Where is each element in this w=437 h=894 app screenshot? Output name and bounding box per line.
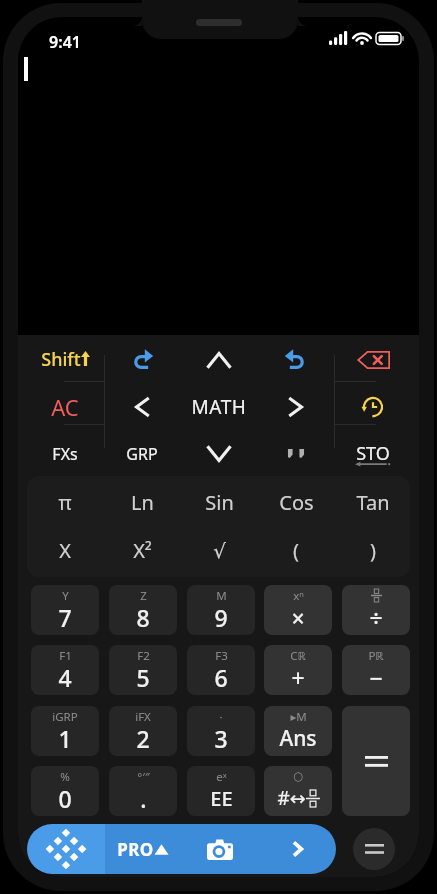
staticText: xⁿ — [293, 588, 304, 604]
button[interactable]: ○ — [264, 766, 332, 816]
staticText: F3 — [215, 648, 228, 664]
button[interactable]: Y — [31, 585, 99, 635]
staticText: MATH — [191, 394, 247, 420]
staticText: 0 — [58, 783, 72, 814]
staticText: ) — [370, 537, 376, 564]
staticText: 9 — [214, 602, 228, 633]
staticText: 3 — [214, 723, 228, 754]
button[interactable]: π — [27, 479, 103, 525]
staticText: ÷ — [369, 602, 383, 633]
button[interactable]: Ln — [104, 479, 180, 525]
staticText: iFX — [135, 709, 151, 725]
button[interactable]: iFX — [109, 706, 177, 756]
button[interactable]: F3 — [187, 645, 255, 695]
button[interactable]: Sin — [181, 479, 257, 525]
staticText: Y — [62, 588, 69, 604]
button[interactable]: X — [27, 527, 103, 573]
button[interactable]: Move down — [182, 432, 256, 475]
button[interactable]: Camera — [188, 824, 252, 874]
button[interactable]: GRP — [105, 432, 179, 475]
button[interactable]: ) — [335, 527, 411, 573]
button[interactable]: Move left — [105, 385, 179, 428]
button[interactable]: iGRP — [31, 706, 99, 756]
staticText: 2 — [136, 723, 150, 754]
button[interactable]: Pℝ — [342, 645, 410, 695]
staticText: F2 — [137, 648, 150, 664]
staticText: GRP — [126, 443, 158, 465]
staticText: Sin — [205, 489, 234, 516]
staticText: 6 — [214, 662, 228, 693]
button[interactable]: % — [31, 766, 99, 816]
button[interactable]: MATH — [182, 385, 256, 428]
staticText: 5 — [136, 662, 150, 693]
staticText: X² — [133, 537, 152, 564]
button[interactable]: F2 — [109, 645, 177, 695]
button[interactable]: Equals — [342, 706, 410, 816]
staticText: AC — [51, 392, 79, 422]
staticText: ▸M — [290, 709, 307, 725]
staticText: Z — [140, 588, 147, 604]
staticText: eˣ — [216, 769, 227, 785]
button[interactable]: Tan — [335, 479, 411, 525]
button[interactable]: Z — [109, 585, 177, 635]
staticText: 4 — [58, 662, 72, 693]
staticText: . — [140, 783, 147, 814]
button[interactable]: Cos — [258, 479, 334, 525]
button[interactable]: AC — [28, 385, 102, 428]
staticText: #↔ — [277, 785, 306, 811]
button[interactable]: °′″ — [109, 766, 177, 816]
staticText: ○ — [293, 769, 304, 782]
staticText: + — [291, 662, 305, 693]
button[interactable]: ÷ — [342, 585, 410, 635]
staticText: · — [219, 709, 223, 725]
staticText: M — [216, 588, 227, 604]
button[interactable]: xⁿ — [264, 585, 332, 635]
button[interactable]: Next — [267, 824, 327, 874]
button[interactable]: eˣ — [187, 766, 255, 816]
button[interactable]: Apps menu — [27, 824, 105, 874]
button[interactable]: FXs — [28, 432, 102, 475]
button[interactable]: History — [336, 385, 410, 428]
staticText: − — [369, 662, 383, 693]
staticText: Tan — [356, 489, 390, 516]
staticText: √ — [213, 539, 226, 562]
staticText: FXs — [52, 443, 78, 465]
staticText: Ans — [279, 724, 317, 753]
staticText: Cℝ — [290, 648, 306, 664]
staticText: 1 — [58, 723, 72, 754]
staticText: Ln — [131, 489, 154, 516]
staticText: °′″ — [137, 769, 150, 785]
button[interactable]: ▸M — [264, 706, 332, 756]
button[interactable]: M — [187, 585, 255, 635]
staticText: Cos — [279, 489, 314, 516]
button[interactable]: PRO — [103, 824, 183, 874]
staticText: iGRP — [52, 709, 78, 725]
button[interactable]: STO — [336, 432, 410, 475]
staticText: × — [291, 602, 305, 633]
button[interactable] — [259, 432, 333, 475]
button[interactable]: √ — [181, 527, 257, 573]
staticText: 8 — [136, 602, 150, 633]
button[interactable]: Cℝ — [264, 645, 332, 695]
staticText: Pℝ — [368, 648, 384, 664]
button[interactable]: ( — [258, 527, 334, 573]
staticText: 7 — [58, 602, 72, 633]
staticText: % — [60, 769, 70, 785]
staticText: STO — [356, 441, 390, 466]
staticText: X — [59, 537, 71, 564]
button[interactable]: X² — [104, 527, 180, 573]
staticText: EE — [210, 785, 233, 812]
staticText: F1 — [59, 648, 72, 664]
staticText: 9:41 — [49, 31, 81, 53]
button[interactable]: F1 — [31, 645, 99, 695]
staticText: PRO — [117, 838, 154, 861]
button[interactable]: Undo — [259, 338, 333, 381]
staticText: ( — [293, 537, 299, 564]
button[interactable]: Backspace — [336, 338, 410, 381]
button[interactable]: Shift — [28, 338, 102, 381]
button[interactable]: Move up — [182, 338, 256, 381]
button[interactable]: Move right — [259, 385, 333, 428]
button[interactable]: · — [187, 706, 255, 756]
button[interactable]: Redo — [105, 338, 179, 381]
button[interactable]: Equals — [353, 828, 395, 870]
